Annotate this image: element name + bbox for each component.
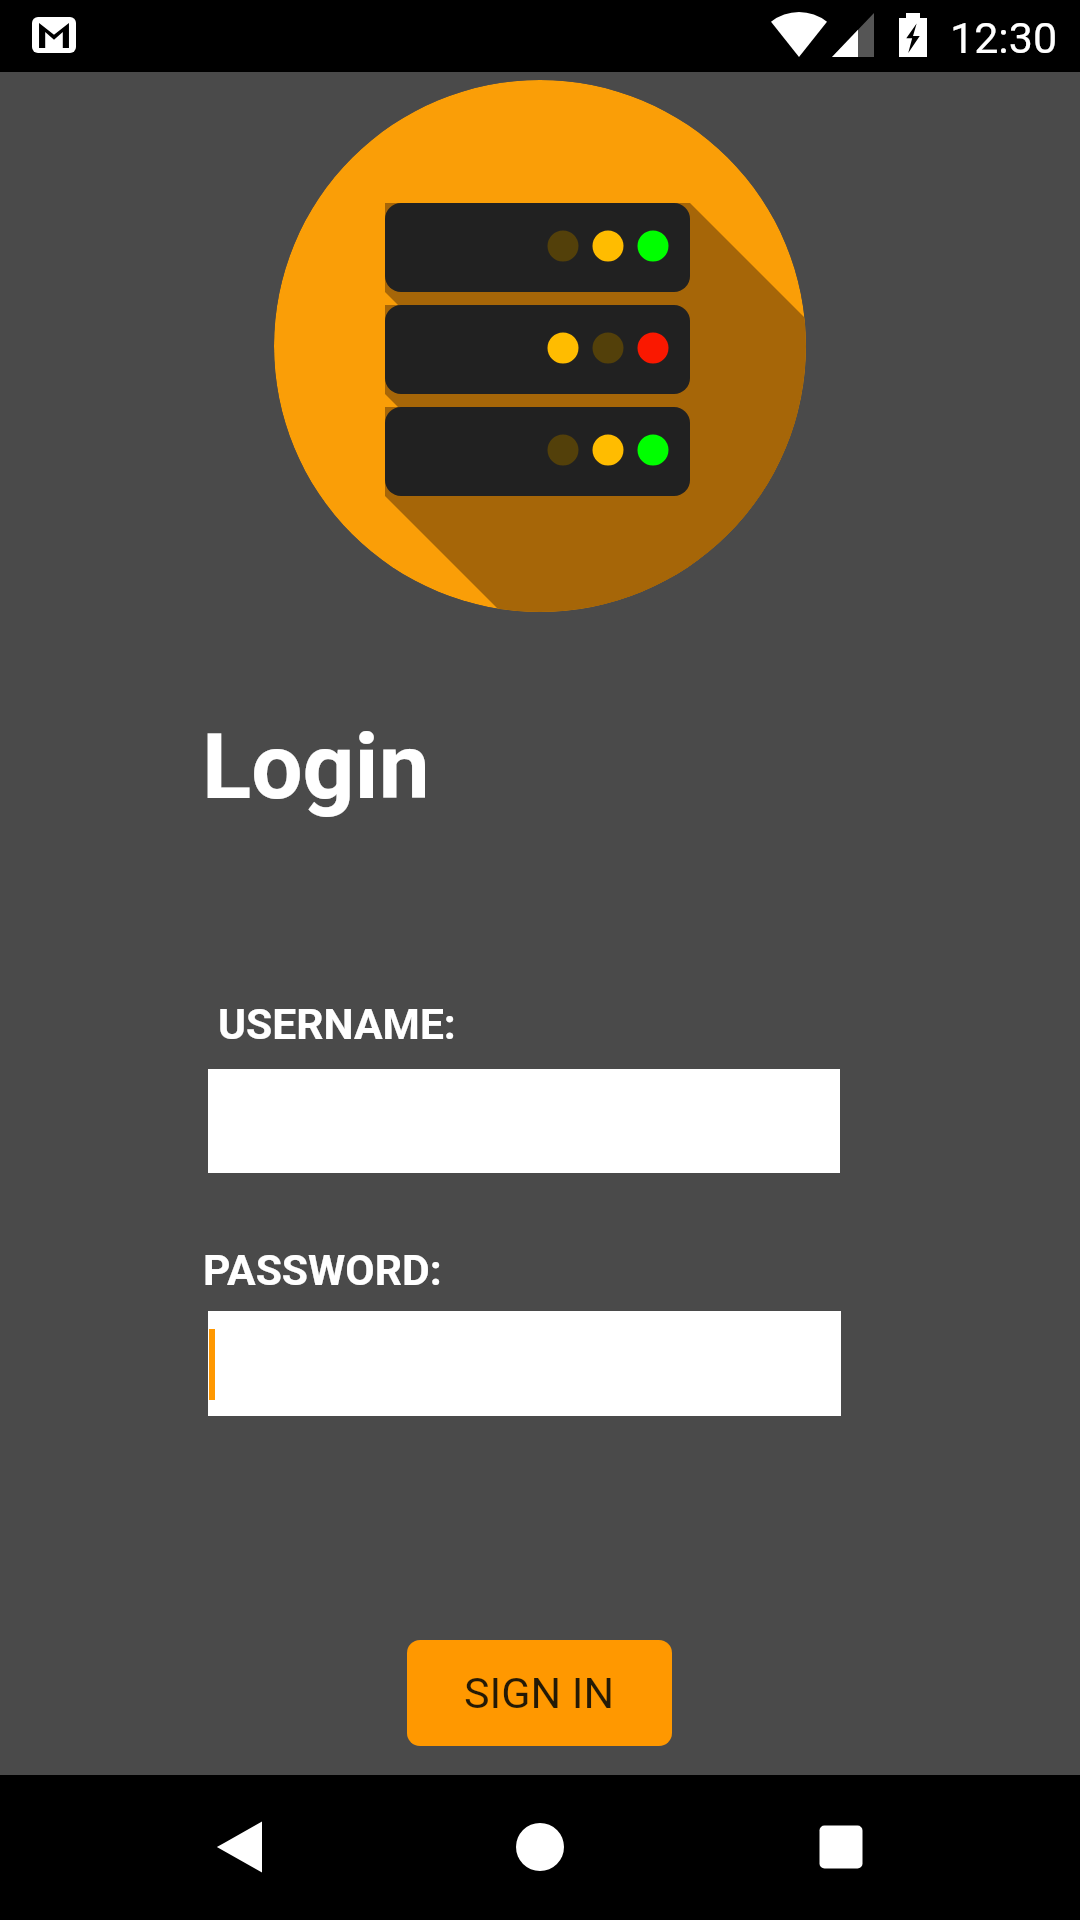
button[interactable]: SIGN IN [407,1640,672,1746]
staticText: 12:30 [950,13,1058,63]
staticText: USERNAME: [218,999,456,1049]
button[interactable]: Recent apps [781,1797,901,1897]
button[interactable] [208,1311,841,1416]
staticText: Login [202,714,430,821]
staticText: SIGN IN [464,1668,615,1718]
button[interactable]: Home [480,1797,600,1897]
staticText: PASSWORD: [203,1245,442,1295]
button[interactable]: Back [181,1797,301,1897]
